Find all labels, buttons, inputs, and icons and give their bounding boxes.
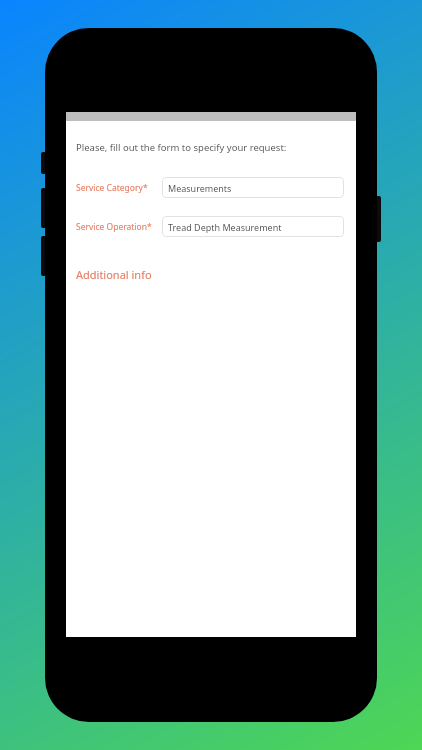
other: Silent switch bbox=[41, 152, 47, 174]
other: Volume down bbox=[41, 236, 47, 276]
button[interactable]: Measurements bbox=[162, 177, 344, 198]
other: Volume up bbox=[41, 188, 47, 228]
staticText: Service Operation bbox=[76, 221, 147, 233]
staticText: * bbox=[147, 221, 152, 233]
staticText: * bbox=[143, 182, 148, 194]
staticText: Service Category bbox=[76, 182, 143, 194]
other: Power bbox=[375, 196, 381, 242]
button[interactable]: Additional info bbox=[76, 267, 152, 282]
button[interactable]: Tread Depth Measurement bbox=[162, 216, 344, 237]
staticText: Please, fill out the form to specify you… bbox=[76, 141, 287, 154]
staticText: Tread Depth Measurement bbox=[168, 221, 282, 233]
staticText: Measurements bbox=[168, 182, 232, 194]
staticText: Additional info bbox=[76, 267, 152, 282]
